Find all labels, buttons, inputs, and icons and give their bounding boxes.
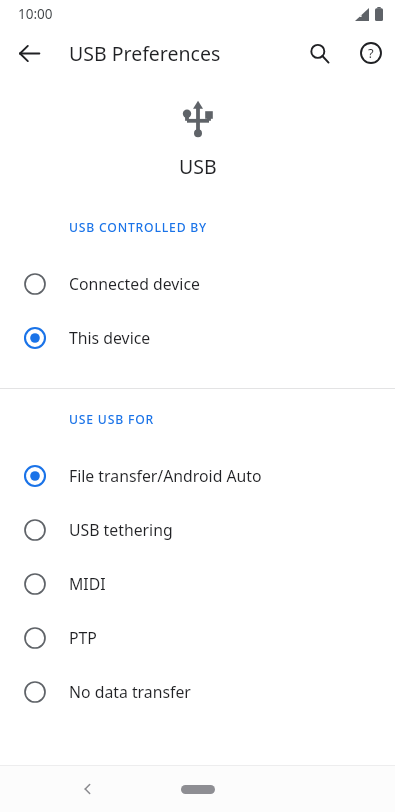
staticText: Connected device (69, 273, 200, 295)
staticText: File transfer/Android Auto (69, 465, 262, 487)
button[interactable]: Back (10, 34, 48, 72)
button[interactable]: File transfer/Android Auto (0, 449, 395, 503)
staticText: No data transfer (69, 681, 191, 703)
staticText: ? (368, 44, 374, 62)
button[interactable]: Connected device (0, 257, 395, 311)
staticText: PTP (69, 627, 97, 649)
staticText: USE USB FOR (69, 411, 154, 428)
staticText: USB Preferences (69, 40, 221, 67)
button[interactable]: Search (299, 33, 339, 73)
staticText: 10:00 (18, 5, 53, 23)
button[interactable]: MIDI (0, 557, 395, 611)
staticText: MIDI (69, 573, 106, 595)
button[interactable]: USB tethering (0, 503, 395, 557)
button[interactable]: PTP (0, 611, 395, 665)
staticText: This device (69, 327, 151, 349)
button[interactable]: This device (0, 311, 395, 365)
button[interactable]: Back (70, 771, 106, 807)
staticText: USB (179, 153, 217, 180)
button[interactable]: Help (351, 33, 391, 73)
button[interactable]: Home (166, 776, 230, 802)
staticText: USB CONTROLLED BY (69, 219, 208, 236)
button[interactable]: No data transfer (0, 665, 395, 719)
staticText: USB tethering (69, 519, 173, 541)
